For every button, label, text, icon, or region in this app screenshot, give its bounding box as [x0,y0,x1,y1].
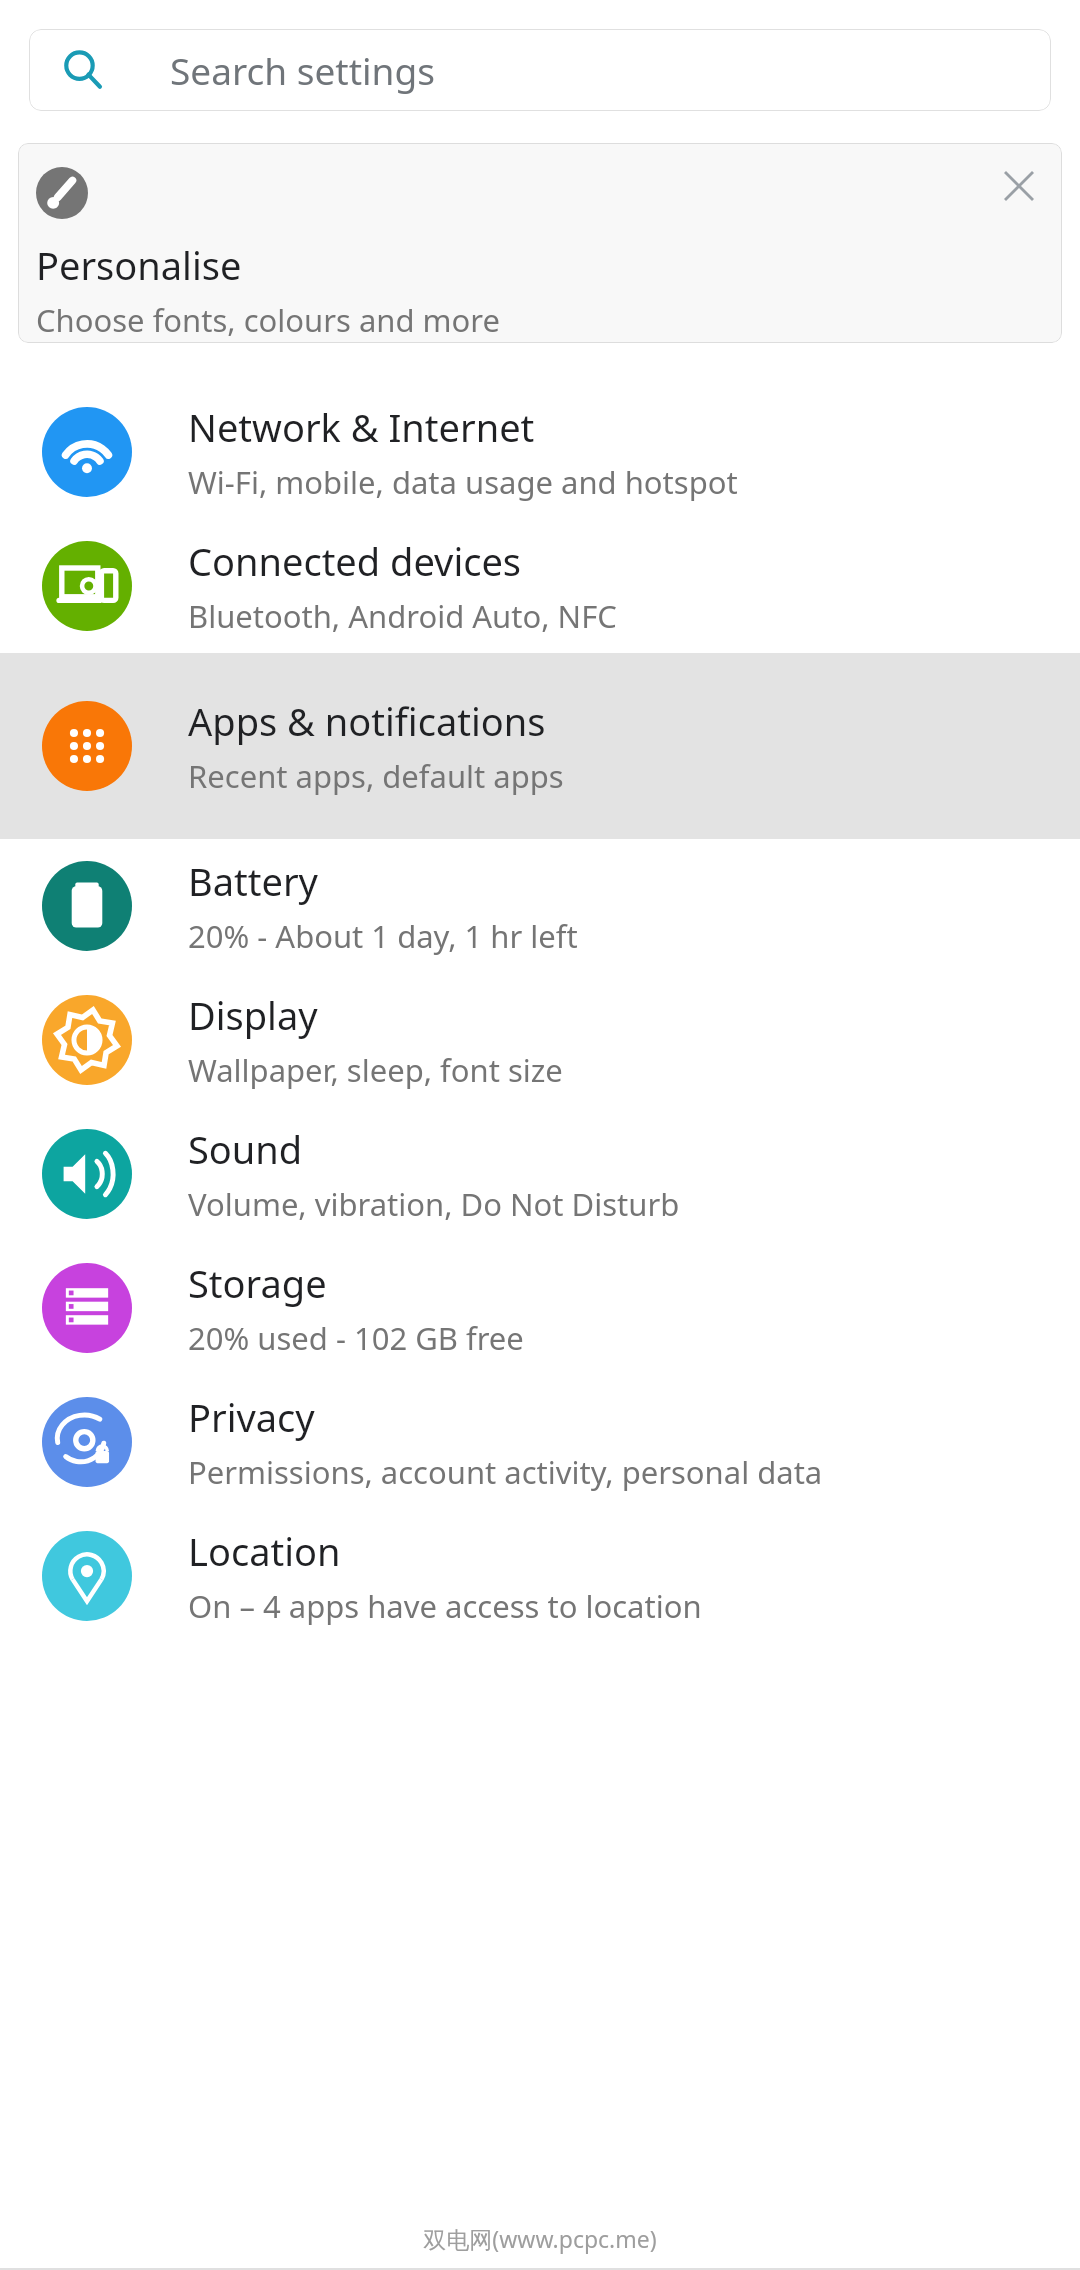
staticText: Apps & notifications [188,695,546,747]
staticText: Search settings [170,45,435,95]
button[interactable]: Search [29,29,1051,111]
staticText: Wallpaper, sleep, font size [188,1049,563,1091]
button[interactable]: Connected devices [0,519,1080,653]
button[interactable]: Personalise [18,143,1062,343]
staticText: Volume, vibration, Do Not Disturb [188,1183,680,1225]
staticText: On – 4 apps have access to location [188,1585,702,1627]
button[interactable]: Sound [0,1107,1080,1241]
staticText: Wi-Fi, mobile, data usage and hotspot [188,461,738,503]
staticText: Personalise [36,239,242,291]
button[interactable]: Display [0,973,1080,1107]
staticText: 20% used - 102 GB free [188,1317,524,1359]
button[interactable]: Apps & notifications [0,653,1080,839]
staticText: Display [188,989,318,1041]
button[interactable]: Privacy [0,1375,1080,1509]
button[interactable]: Battery [0,839,1080,973]
staticText: Recent apps, default apps [188,755,564,797]
staticText: Location [188,1525,341,1577]
button[interactable]: Dismiss [990,157,1048,215]
staticText: Privacy [188,1391,315,1443]
staticText: Sound [188,1123,303,1175]
button[interactable]: Storage [0,1241,1080,1375]
staticText: 20% - About 1 day, 1 hr left [188,915,578,957]
staticText: 双电网(www.pcpc.me) [0,2223,1080,2254]
staticText: Network & Internet [188,401,535,453]
staticText: Battery [188,855,318,907]
staticText: Permissions, account activity, personal … [188,1451,823,1493]
staticText: Connected devices [188,535,522,587]
button[interactable]: Network & Internet [0,385,1080,519]
other: Search [61,48,105,92]
staticText: Bluetooth, Android Auto, NFC [188,595,617,637]
staticText: Choose fonts, colours and more [36,299,500,341]
staticText: Storage [188,1257,327,1309]
button[interactable]: Location [0,1509,1080,1643]
